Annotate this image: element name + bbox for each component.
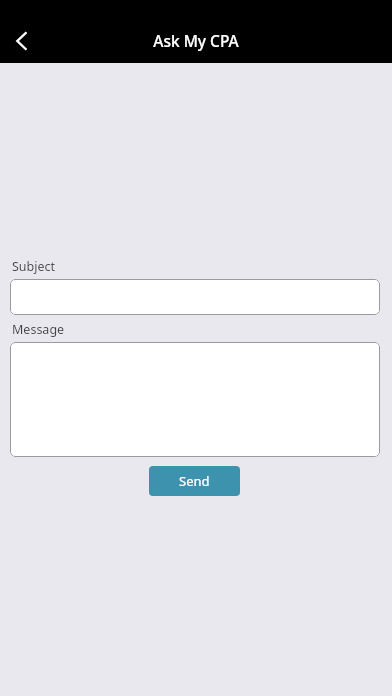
staticText: Subject (12, 258, 56, 275)
staticText: Ask My CPA (0, 30, 392, 51)
button[interactable]: Message input (10, 342, 380, 457)
staticText: Send (179, 472, 210, 490)
button[interactable]: Subject input (10, 279, 380, 315)
staticText: Message (12, 321, 65, 338)
button[interactable]: Back (0, 19, 44, 63)
button[interactable]: Send (149, 466, 240, 496)
